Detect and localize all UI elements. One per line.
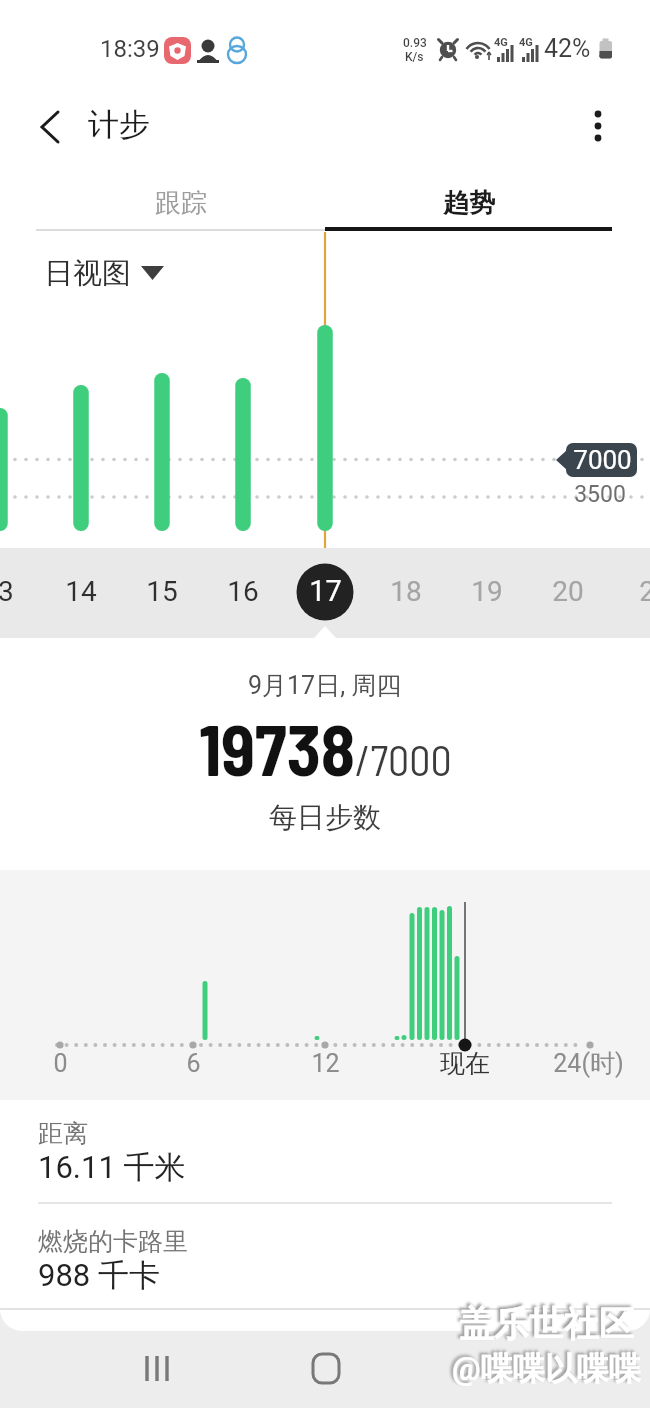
- button[interactable]: [28, 103, 76, 151]
- staticText: 13: [0, 575, 14, 608]
- staticText: 日视图: [44, 255, 131, 292]
- button[interactable]: [295, 1340, 355, 1400]
- staticText: 42%: [544, 34, 591, 63]
- staticText: @喋喋以喋喋: [452, 1349, 641, 1389]
- staticText: 0.93: [403, 36, 427, 50]
- staticText: 4G: [494, 36, 508, 49]
- button[interactable]: [527, 548, 608, 638]
- staticText: 17: [309, 574, 342, 608]
- button[interactable]: 趋势: [325, 176, 612, 230]
- staticText: 19738/7000: [199, 706, 452, 790]
- staticText: 18: [390, 575, 422, 608]
- staticText: 15: [146, 575, 178, 608]
- staticText: 16: [227, 575, 259, 608]
- button[interactable]: [38, 246, 173, 292]
- button[interactable]: [608, 548, 650, 638]
- staticText: 现在: [440, 1048, 490, 1079]
- button[interactable]: 跟踪: [36, 176, 325, 230]
- staticText: 12: [311, 1049, 340, 1078]
- button[interactable]: [122, 548, 203, 638]
- staticText: 燃烧的卡路里: [38, 1226, 188, 1257]
- staticText: 14: [65, 575, 97, 608]
- button[interactable]: [0, 548, 41, 638]
- staticText: 计步: [88, 105, 150, 144]
- staticText: K/s: [405, 50, 424, 64]
- staticText: 24(时): [553, 1048, 624, 1079]
- staticText: 18:39: [100, 35, 160, 63]
- staticText: 16.11 千米: [38, 1148, 186, 1187]
- button[interactable]: [41, 548, 122, 638]
- staticText: 6: [186, 1049, 201, 1078]
- staticText: 7000: [573, 445, 632, 475]
- staticText: 19: [471, 575, 503, 608]
- staticText: 每日步数: [269, 800, 381, 835]
- button[interactable]: [462, 1340, 522, 1400]
- staticText: 盖乐世社区: [459, 1302, 634, 1346]
- button[interactable]: [127, 1340, 187, 1400]
- button[interactable]: [284, 548, 365, 638]
- staticText: 4G: [519, 36, 533, 49]
- staticText: 趋势: [443, 187, 495, 220]
- button[interactable]: [578, 103, 622, 147]
- staticText: 21: [639, 575, 650, 608]
- staticText: 988 千卡: [38, 1256, 160, 1295]
- staticText: 20: [552, 575, 584, 608]
- button[interactable]: [203, 548, 284, 638]
- staticText: 3500: [574, 481, 626, 508]
- button[interactable]: [446, 548, 527, 638]
- staticText: 距离: [38, 1118, 88, 1149]
- staticText: 9月17日, 周四: [248, 670, 402, 701]
- button[interactable]: [365, 548, 446, 638]
- staticText: 0: [53, 1049, 68, 1078]
- staticText: 跟踪: [155, 187, 207, 220]
